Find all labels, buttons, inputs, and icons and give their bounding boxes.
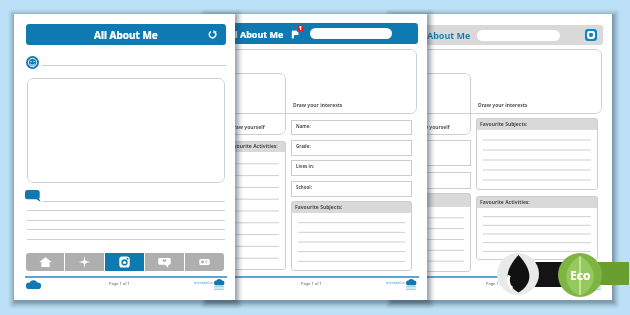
button[interactable]: Black and white version [497, 253, 539, 295]
button[interactable]: All About Me [217, 23, 418, 44]
button[interactable]: Home [26, 253, 64, 271]
staticText: 1 [299, 25, 302, 32]
button[interactable]: Eco version [558, 253, 602, 297]
button[interactable]: Profile [26, 56, 39, 69]
staticText: Draw your interests [478, 102, 528, 109]
staticText: School: [296, 184, 312, 190]
staticText: Favourite Subjects: [480, 121, 528, 128]
staticText: Draw your interests [293, 102, 343, 109]
button[interactable]: All About Me [403, 25, 603, 45]
button[interactable]: Grade: [291, 140, 412, 156]
staticText: visit twinkl.co [386, 281, 405, 285]
button[interactable]: Lives in: [291, 160, 412, 176]
button[interactable]: Messages [145, 253, 184, 271]
button[interactable]: Explore [65, 253, 104, 271]
staticText: Page 1 of 1 [301, 281, 322, 286]
staticText: visit twinkl.co [194, 281, 213, 285]
button[interactable]: Refresh [208, 30, 217, 39]
staticText: All About Me [413, 29, 471, 41]
button[interactable]: Contacts [185, 253, 224, 271]
button[interactable]: School: [291, 181, 412, 197]
staticText: Eco [570, 267, 591, 283]
button[interactable]: All About Me [26, 24, 226, 45]
staticText: Name: [296, 123, 311, 129]
button[interactable] [409, 172, 471, 189]
staticText: Lives in: [296, 163, 315, 169]
staticText: All About Me [226, 28, 284, 40]
staticText: Page 1 of 1 [109, 281, 130, 286]
staticText: All About Me [94, 28, 158, 42]
staticText: Favourite Activities: [480, 199, 530, 206]
staticText: Favourite Activities: [228, 143, 278, 150]
staticText: Page 1 of 1 [486, 281, 507, 286]
button[interactable]: Camera [585, 29, 597, 41]
staticText: visit twinkl.co [571, 281, 590, 285]
button[interactable]: Camera [105, 253, 144, 271]
staticText: Draw yourself [230, 124, 265, 131]
staticText: Grade: [296, 143, 311, 149]
button[interactable]: Name: [291, 120, 412, 135]
staticText: Draw yourself [415, 124, 450, 131]
button[interactable] [409, 140, 471, 166]
staticText: Favourite Subjects: [295, 204, 343, 211]
